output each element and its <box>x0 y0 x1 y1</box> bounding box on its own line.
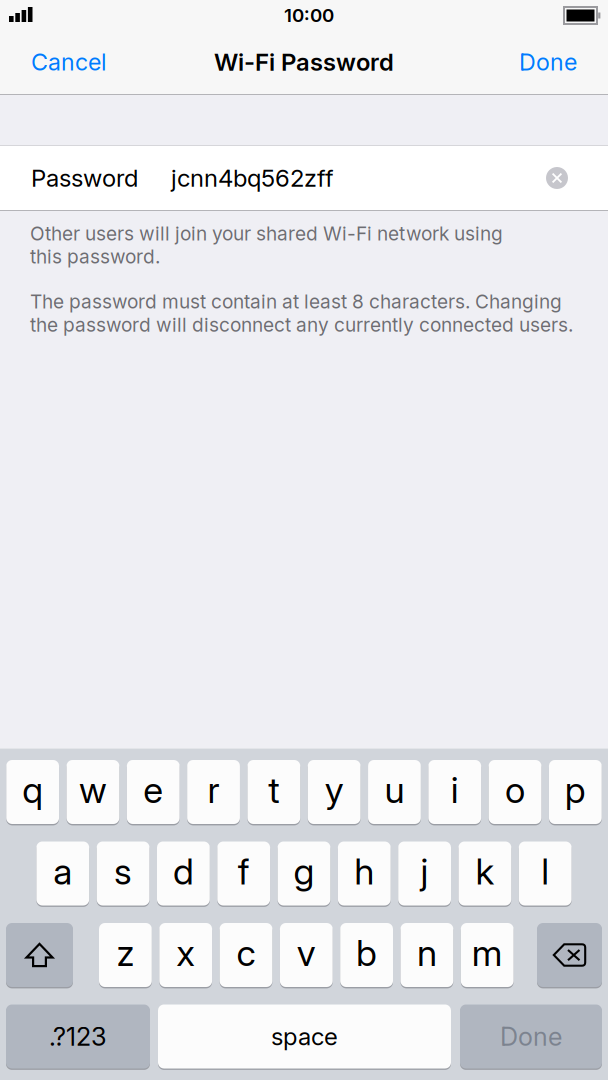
button[interactable]: k <box>458 840 511 906</box>
staticText: v <box>297 931 316 975</box>
staticText: d <box>173 850 194 893</box>
button[interactable]: z <box>99 922 152 988</box>
button[interactable]: s <box>97 840 149 906</box>
staticText: t <box>268 768 279 812</box>
staticText: r <box>207 768 219 812</box>
staticText: Done <box>519 48 577 76</box>
button[interactable]: r <box>187 759 240 825</box>
button[interactable]: h <box>338 840 391 906</box>
button[interactable]: o <box>489 759 541 825</box>
button[interactable]: Done <box>460 1003 602 1069</box>
staticText: m <box>472 931 503 975</box>
button[interactable]: e <box>127 759 180 825</box>
staticText: o <box>505 768 525 812</box>
button[interactable]: .?123 <box>6 1003 150 1069</box>
staticText: q <box>22 768 43 812</box>
button[interactable]: f <box>217 840 270 906</box>
staticText: Wi-Fi Password <box>214 47 394 76</box>
button[interactable]: b <box>340 922 393 988</box>
staticText: Other users will join your shared Wi-Fi … <box>30 222 503 268</box>
button[interactable]: Shift <box>6 922 73 988</box>
staticText: u <box>384 768 404 812</box>
staticText: w <box>79 768 107 812</box>
staticText: p <box>565 768 586 812</box>
staticText: jcnn4bq562zff <box>171 163 334 192</box>
staticText: Done <box>500 1021 562 1052</box>
button[interactable]: q <box>6 759 59 825</box>
staticText: 10:00 <box>284 4 334 27</box>
button[interactable]: g <box>278 840 330 906</box>
staticText: s <box>114 850 132 893</box>
staticText: c <box>236 931 255 975</box>
staticText: g <box>293 850 314 893</box>
button[interactable]: i <box>428 759 481 825</box>
staticText: k <box>475 850 494 893</box>
button[interactable]: Done <box>513 45 583 89</box>
staticText: h <box>354 850 374 893</box>
button[interactable]: m <box>461 922 514 988</box>
staticText: n <box>417 931 437 975</box>
button[interactable]: a <box>36 840 89 906</box>
button[interactable]: d <box>157 840 210 906</box>
staticText: space <box>271 1022 338 1051</box>
button[interactable]: y <box>308 759 361 825</box>
button[interactable]: Password <box>0 146 608 210</box>
staticText: x <box>176 931 195 975</box>
staticText: j <box>421 850 429 893</box>
button[interactable]: l <box>519 840 572 906</box>
button[interactable]: space <box>158 1003 451 1069</box>
button[interactable]: j <box>398 840 451 906</box>
staticText: Cancel <box>31 48 106 76</box>
staticText: l <box>541 850 549 893</box>
button[interactable]: Cancel <box>25 45 112 89</box>
button[interactable]: w <box>66 759 119 825</box>
staticText: a <box>53 850 72 893</box>
staticText: b <box>356 931 377 975</box>
staticText: .?123 <box>49 1021 107 1052</box>
button[interactable]: n <box>400 922 453 988</box>
staticText: e <box>143 768 163 812</box>
button[interactable]: x <box>159 922 212 988</box>
staticText: Password <box>31 163 138 192</box>
staticText: y <box>325 768 344 812</box>
button[interactable]: u <box>368 759 421 825</box>
staticText: The password must contain at least 8 cha… <box>30 290 573 336</box>
button[interactable]: Delete <box>537 922 602 988</box>
button[interactable]: v <box>280 922 333 988</box>
staticText: f <box>238 850 250 893</box>
button[interactable]: t <box>247 759 300 825</box>
staticText: i <box>451 768 459 812</box>
button[interactable]: c <box>220 922 272 988</box>
staticText: z <box>116 931 134 975</box>
button[interactable]: p <box>549 759 602 825</box>
